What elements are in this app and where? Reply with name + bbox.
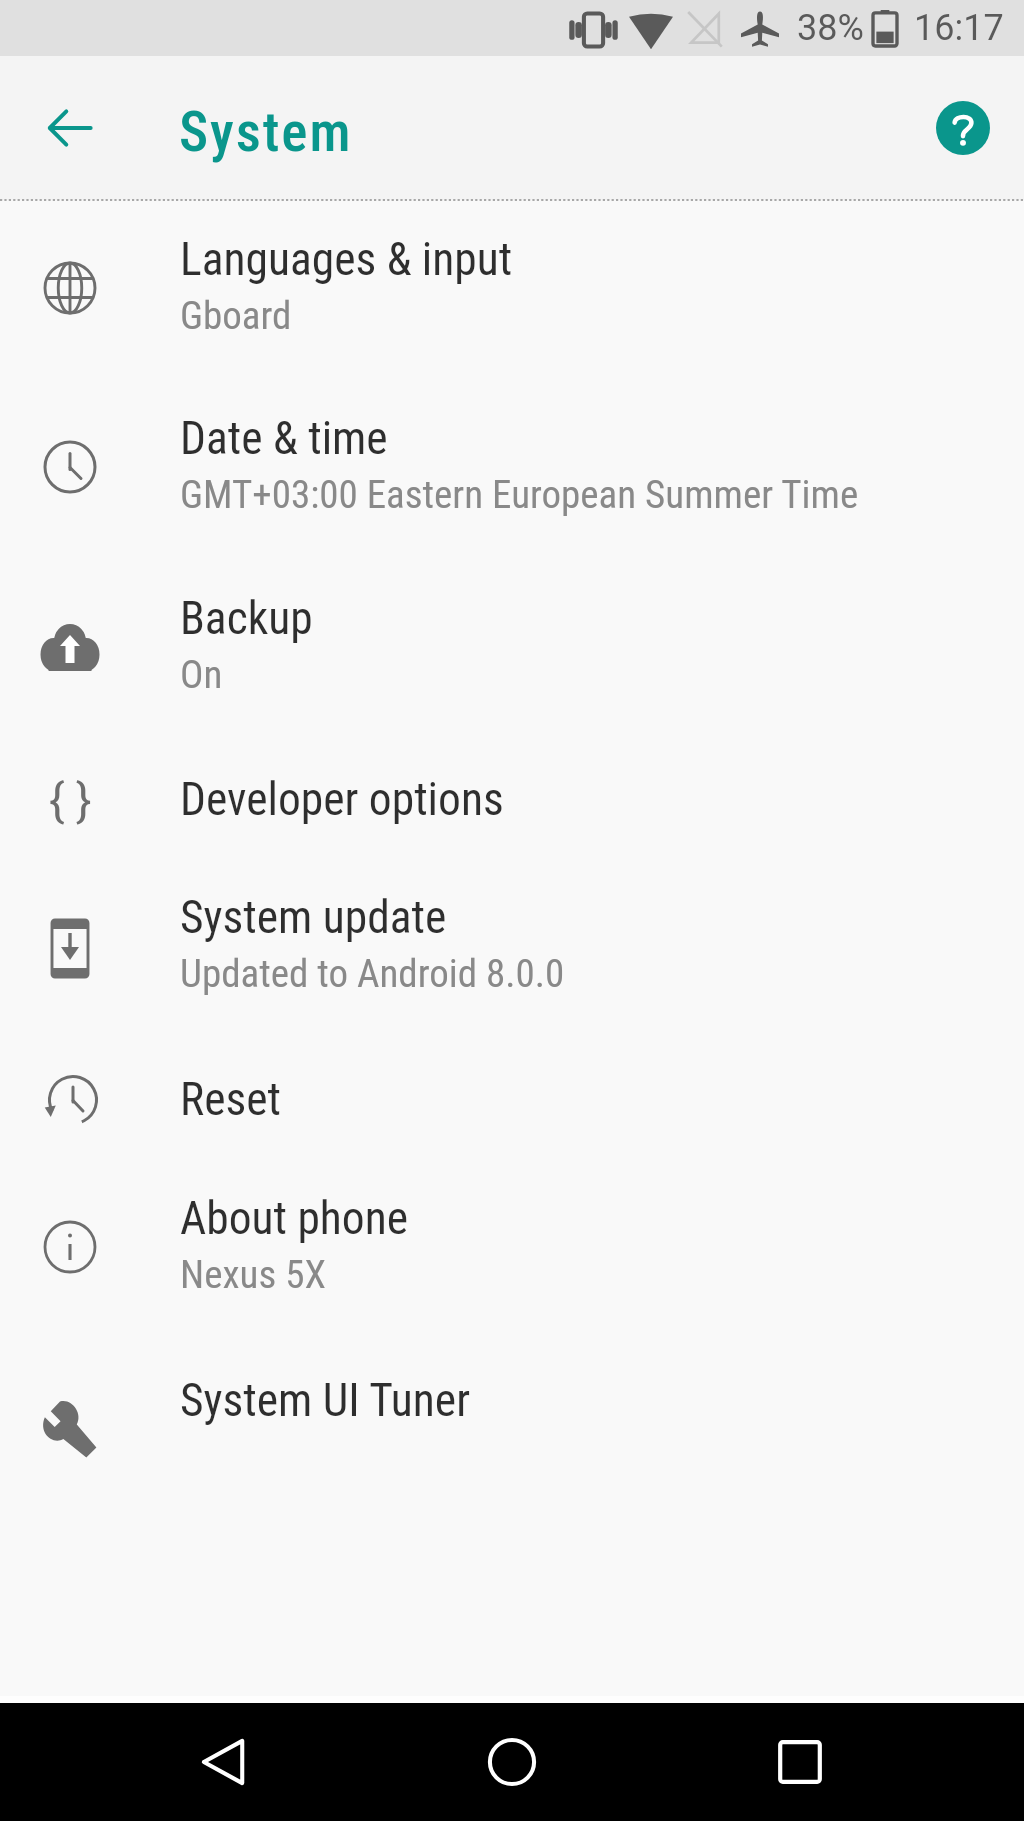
staticText: { } [49, 773, 92, 827]
button[interactable]: System update [0, 860, 1024, 1042]
staticText: Date & time [180, 412, 388, 465]
staticText: Reset [180, 1073, 282, 1126]
button[interactable]: Home [457, 1707, 567, 1817]
staticText: About phone [180, 1192, 409, 1245]
staticText: Gboard [180, 293, 292, 339]
button[interactable]: System UI Tuner [0, 1343, 1024, 1461]
staticText: GMT+03:00 Eastern European Summer Time [180, 472, 859, 518]
button[interactable]: Recent apps [745, 1707, 855, 1817]
staticText: Languages & input [180, 233, 513, 286]
staticText: Developer options [180, 773, 504, 826]
button[interactable]: { } [0, 742, 1024, 860]
button[interactable]: Date & time [0, 381, 1024, 561]
staticText: 16:17 [914, 7, 1004, 49]
button[interactable]: About phone [0, 1161, 1024, 1343]
staticText: On [180, 652, 223, 698]
staticText: Backup [180, 592, 313, 645]
staticText: 38% [797, 7, 864, 49]
staticText: System [179, 100, 353, 164]
staticText: Updated to Android 8.0.0 [180, 951, 565, 997]
button[interactable]: Backup [0, 561, 1024, 742]
button[interactable]: Back [169, 1707, 279, 1817]
button[interactable]: Reset [0, 1042, 1024, 1161]
button[interactable]: Navigate up [26, 84, 114, 172]
staticText: Nexus 5X [180, 1252, 326, 1298]
staticText: System UI Tuner [180, 1374, 471, 1427]
button[interactable]: Languages & input [0, 202, 1024, 381]
button[interactable]: Help [919, 84, 1007, 172]
staticText: System update [180, 891, 447, 944]
